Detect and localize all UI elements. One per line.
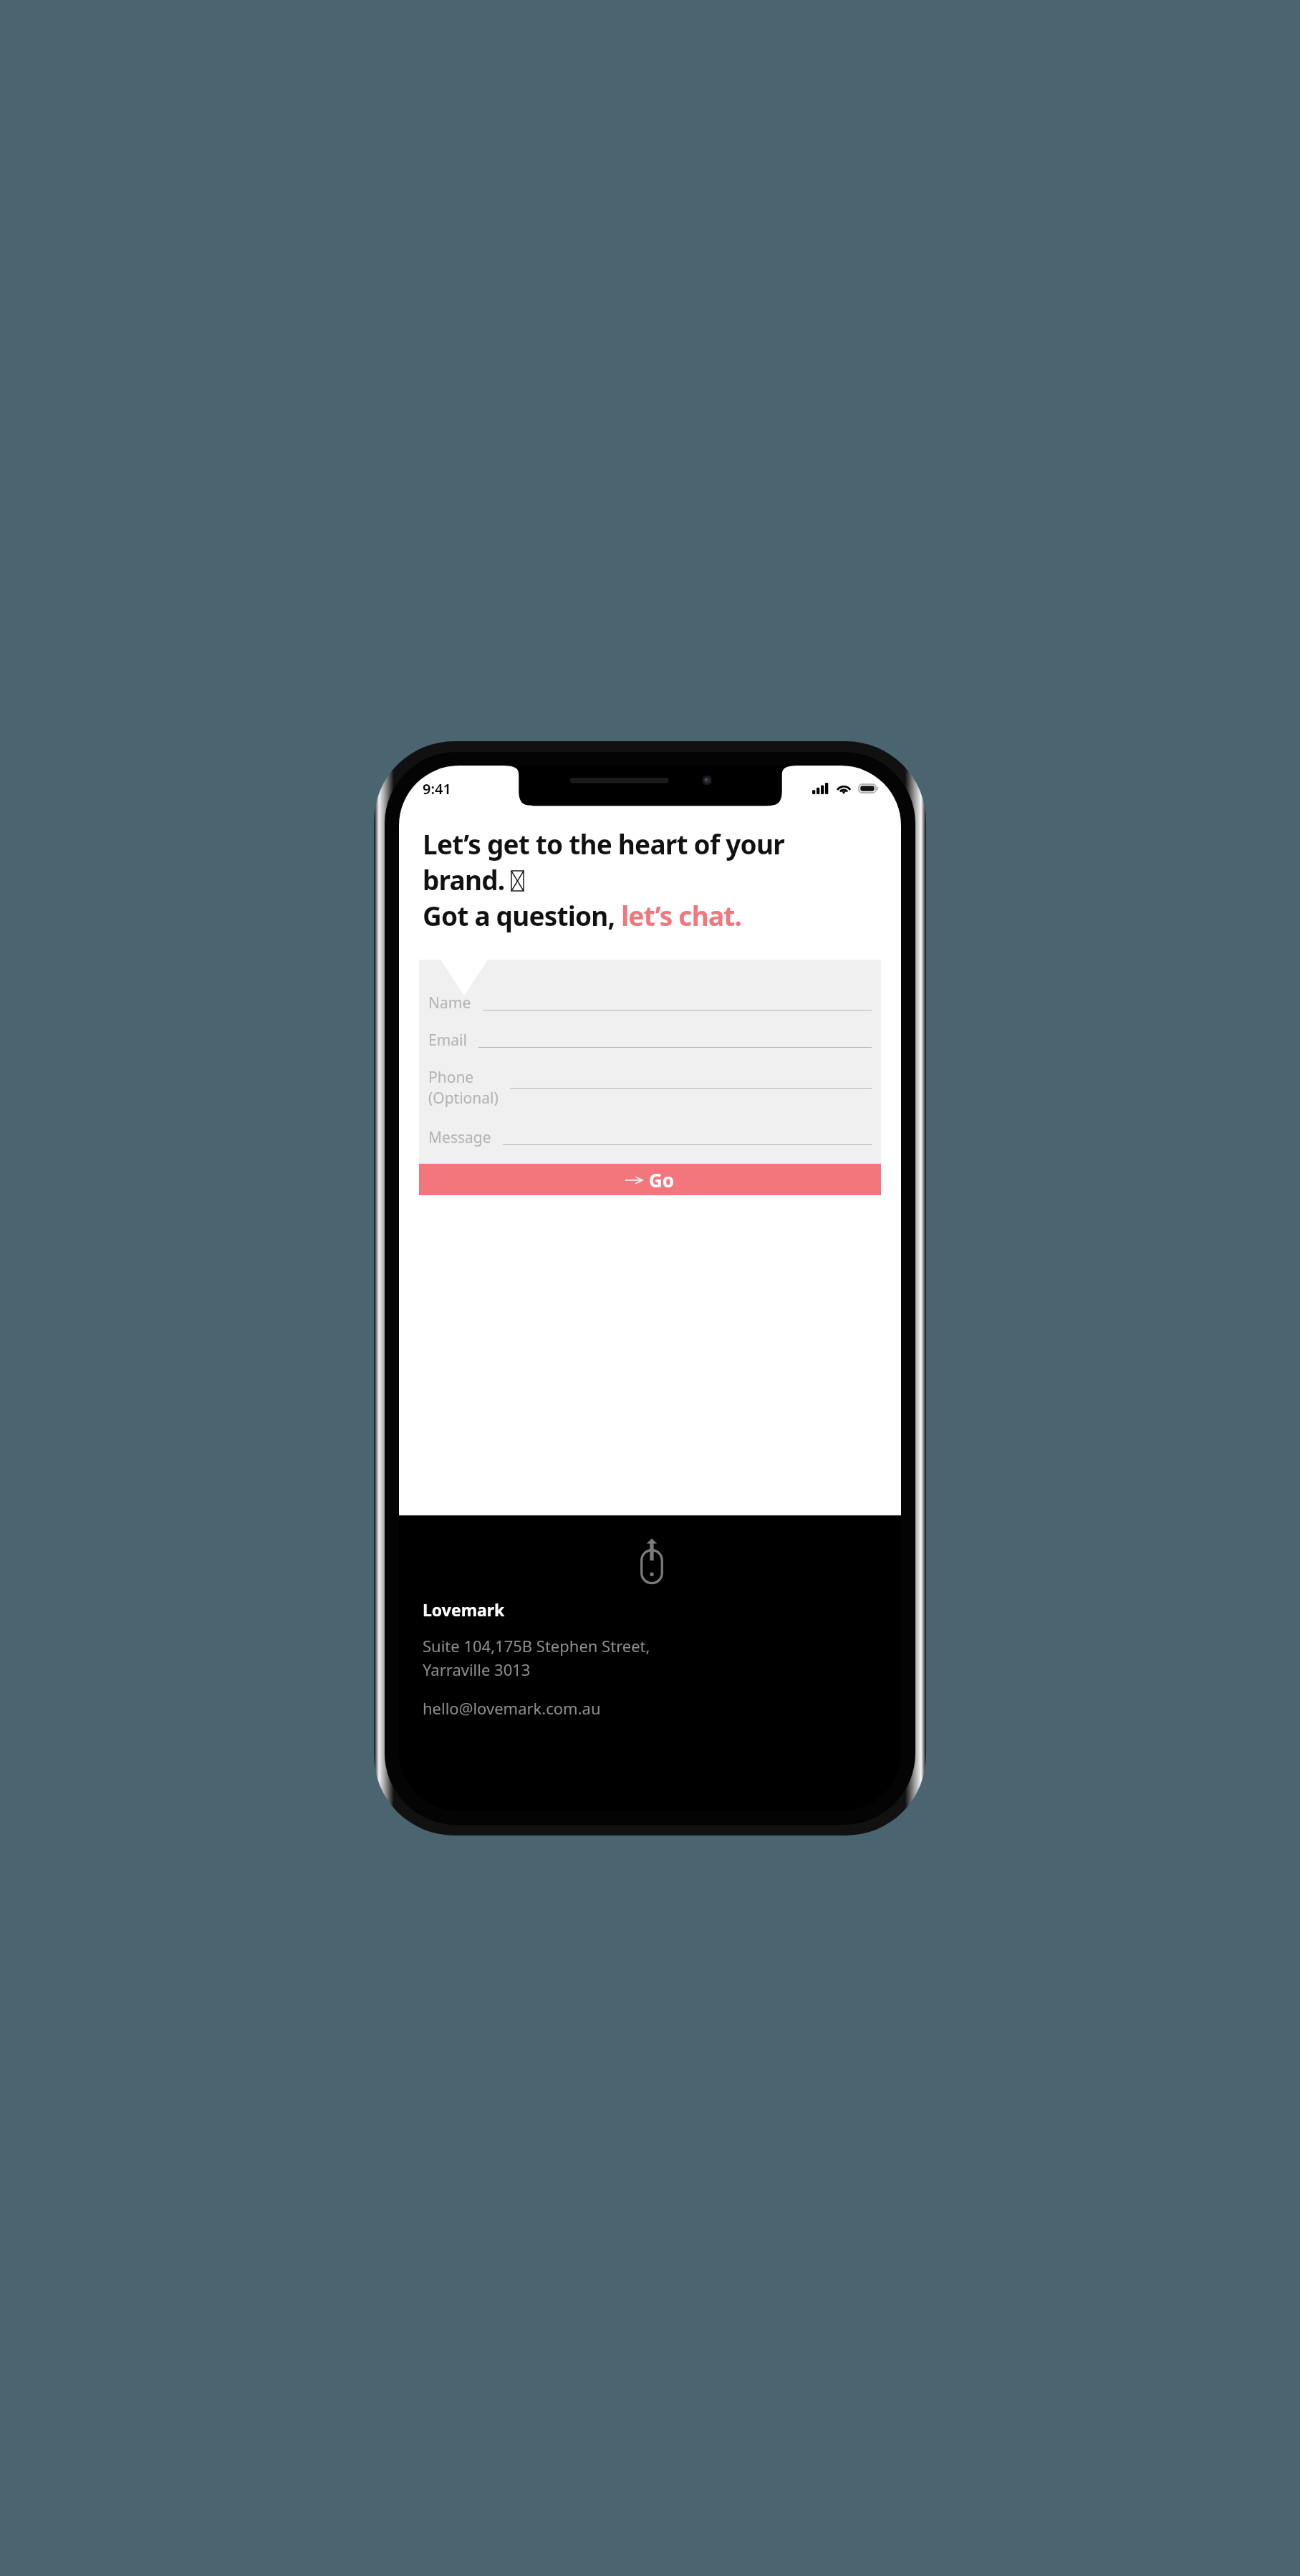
staticText: Got a question, let’s chat.	[423, 897, 742, 933]
staticText: (Optional)	[428, 1088, 499, 1109]
button[interactable]: Scroll to top	[635, 1537, 668, 1584]
staticText: Message	[428, 1127, 491, 1148]
button[interactable]: Email	[428, 1021, 872, 1058]
staticText: brand.	[423, 862, 511, 897]
staticText: Go	[649, 1167, 675, 1192]
button[interactable]: Phone	[428, 1058, 872, 1117]
staticText: 9:41	[423, 779, 451, 799]
button[interactable]: Message	[428, 1117, 872, 1157]
staticText: Lovemark	[423, 1598, 505, 1621]
staticText: Phone	[428, 1067, 474, 1088]
button[interactable]: Go	[419, 1164, 881, 1195]
staticText: Let’s get to the heart of your	[423, 826, 784, 862]
staticText: Name	[428, 993, 471, 1013]
button[interactable]: Name	[428, 984, 872, 1021]
staticText: Suite 104,175B Stephen Street, Yarravill…	[423, 1635, 650, 1680]
button[interactable]: hello@lovemark.com.au	[423, 1697, 601, 1719]
staticText: Email	[428, 1030, 467, 1051]
